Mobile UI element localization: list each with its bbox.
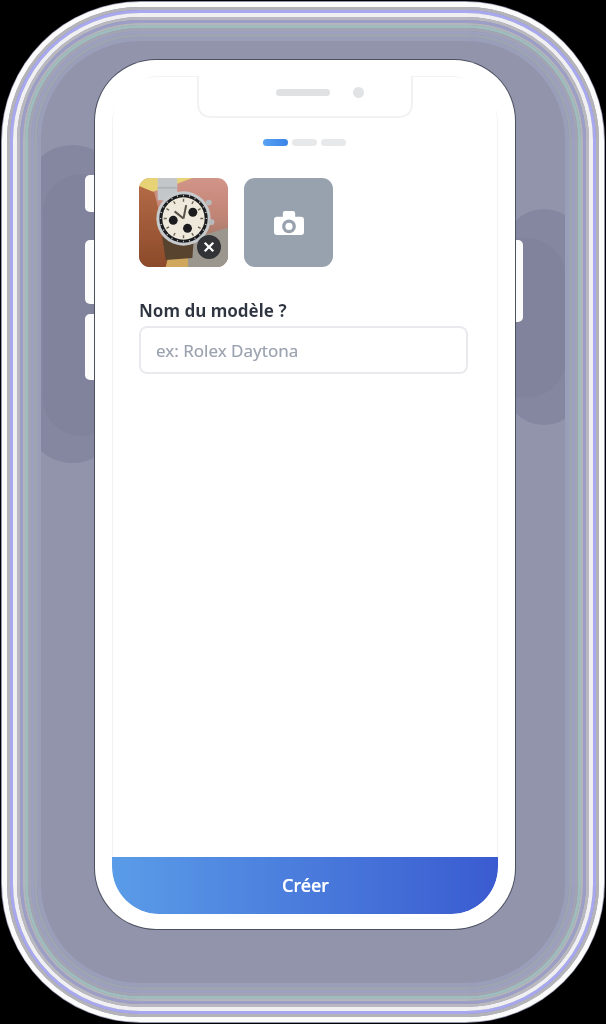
button[interactable]: Ajouter une photo <box>244 178 333 267</box>
button[interactable] <box>263 139 288 146</box>
staticText: Nom du modèle ? <box>139 299 287 322</box>
staticText: Créer <box>282 873 329 898</box>
button[interactable] <box>139 178 228 267</box>
button[interactable]: Supprimer la photo <box>197 235 221 259</box>
button[interactable] <box>321 139 346 146</box>
button[interactable]: ex: Rolex Daytona <box>139 326 468 374</box>
staticText: ex: Rolex Daytona <box>156 339 299 362</box>
button[interactable] <box>292 139 317 146</box>
button[interactable]: Créer <box>112 857 498 914</box>
